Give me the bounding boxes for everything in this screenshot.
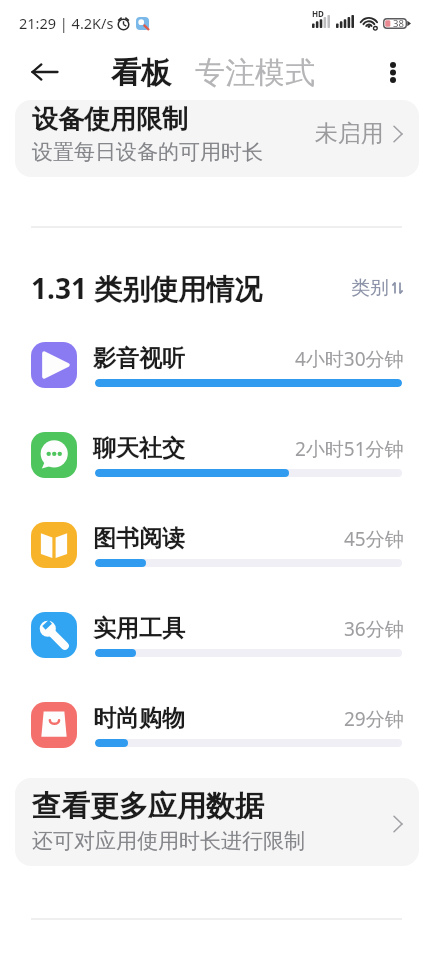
staticText: 聊天社交 xyxy=(93,434,185,463)
staticText: 影音视听 xyxy=(93,344,185,373)
staticText: 类别 xyxy=(351,276,389,300)
button[interactable]: Back xyxy=(26,53,64,91)
staticText: 看板 xyxy=(111,54,171,92)
staticText: 查看更多应用数据 xyxy=(32,788,264,825)
staticText: 45分钟 xyxy=(344,526,404,552)
button[interactable]: 图书阅读 xyxy=(0,508,434,582)
button[interactable]: 看板 xyxy=(111,54,171,92)
staticText: 时尚购物 xyxy=(93,704,185,733)
button[interactable]: More options xyxy=(374,53,412,91)
staticText: 实用工具 xyxy=(93,614,185,643)
staticText: 21:29 | 4.2K/s xyxy=(19,13,114,33)
staticText: 2小时51分钟 xyxy=(295,436,404,462)
staticText: 还可对应用使用时长进行限制 xyxy=(32,828,305,854)
staticText: 设备使用限制 xyxy=(32,103,188,136)
button[interactable]: 专注模式 xyxy=(195,54,315,92)
button[interactable]: 聊天社交 xyxy=(0,418,434,492)
button[interactable]: 查看更多应用数据 xyxy=(15,778,419,866)
staticText: 38 xyxy=(393,17,404,30)
staticText: 36分钟 xyxy=(344,616,404,642)
staticText: 未启用 xyxy=(315,119,384,148)
staticText: 图书阅读 xyxy=(93,524,185,553)
button[interactable]: 实用工具 xyxy=(0,598,434,672)
staticText: 1.31 类别使用情况 xyxy=(31,269,263,307)
staticText: 专注模式 xyxy=(195,54,315,92)
staticText: 4小时30分钟 xyxy=(295,346,404,372)
staticText: 设置每日设备的可用时长 xyxy=(32,139,263,165)
staticText: 29分钟 xyxy=(344,706,404,732)
button[interactable]: 影音视听 xyxy=(0,328,434,402)
button[interactable]: 类别 xyxy=(351,276,403,300)
staticText: HD xyxy=(312,8,324,19)
button[interactable]: 设备使用限制 xyxy=(15,100,419,177)
button[interactable]: 时尚购物 xyxy=(0,688,434,762)
